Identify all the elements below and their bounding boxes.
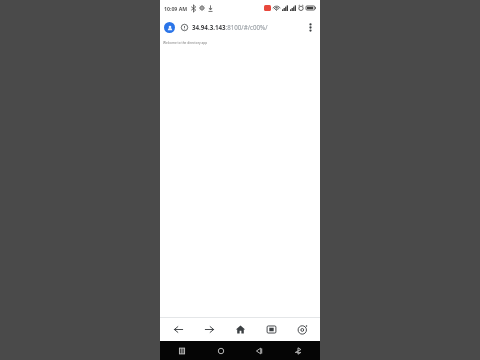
button[interactable]: Back bbox=[243, 341, 275, 360]
button[interactable]: Screenshot bbox=[166, 341, 198, 360]
button[interactable]: Account bbox=[164, 22, 175, 33]
button[interactable]: Home bbox=[205, 341, 237, 360]
button[interactable]: Site information bbox=[181, 24, 188, 31]
button[interactable]: Settings bbox=[289, 318, 315, 341]
button[interactable]: Home bbox=[227, 318, 253, 341]
button[interactable]: Forward bbox=[196, 318, 222, 341]
button[interactable]: 34.94.3.143:8100/#/c00%/ bbox=[192, 23, 300, 31]
staticText: 10:09 AM bbox=[164, 5, 188, 12]
button[interactable]: Tabs bbox=[258, 318, 284, 341]
staticText: 34.94.3.143:8100/#/c00%/ bbox=[192, 23, 268, 31]
button[interactable]: Back bbox=[165, 318, 191, 341]
button[interactable]: Assistant bbox=[282, 341, 314, 360]
staticText: Welcome to the directory app bbox=[163, 41, 208, 45]
button[interactable]: More options bbox=[304, 21, 316, 33]
